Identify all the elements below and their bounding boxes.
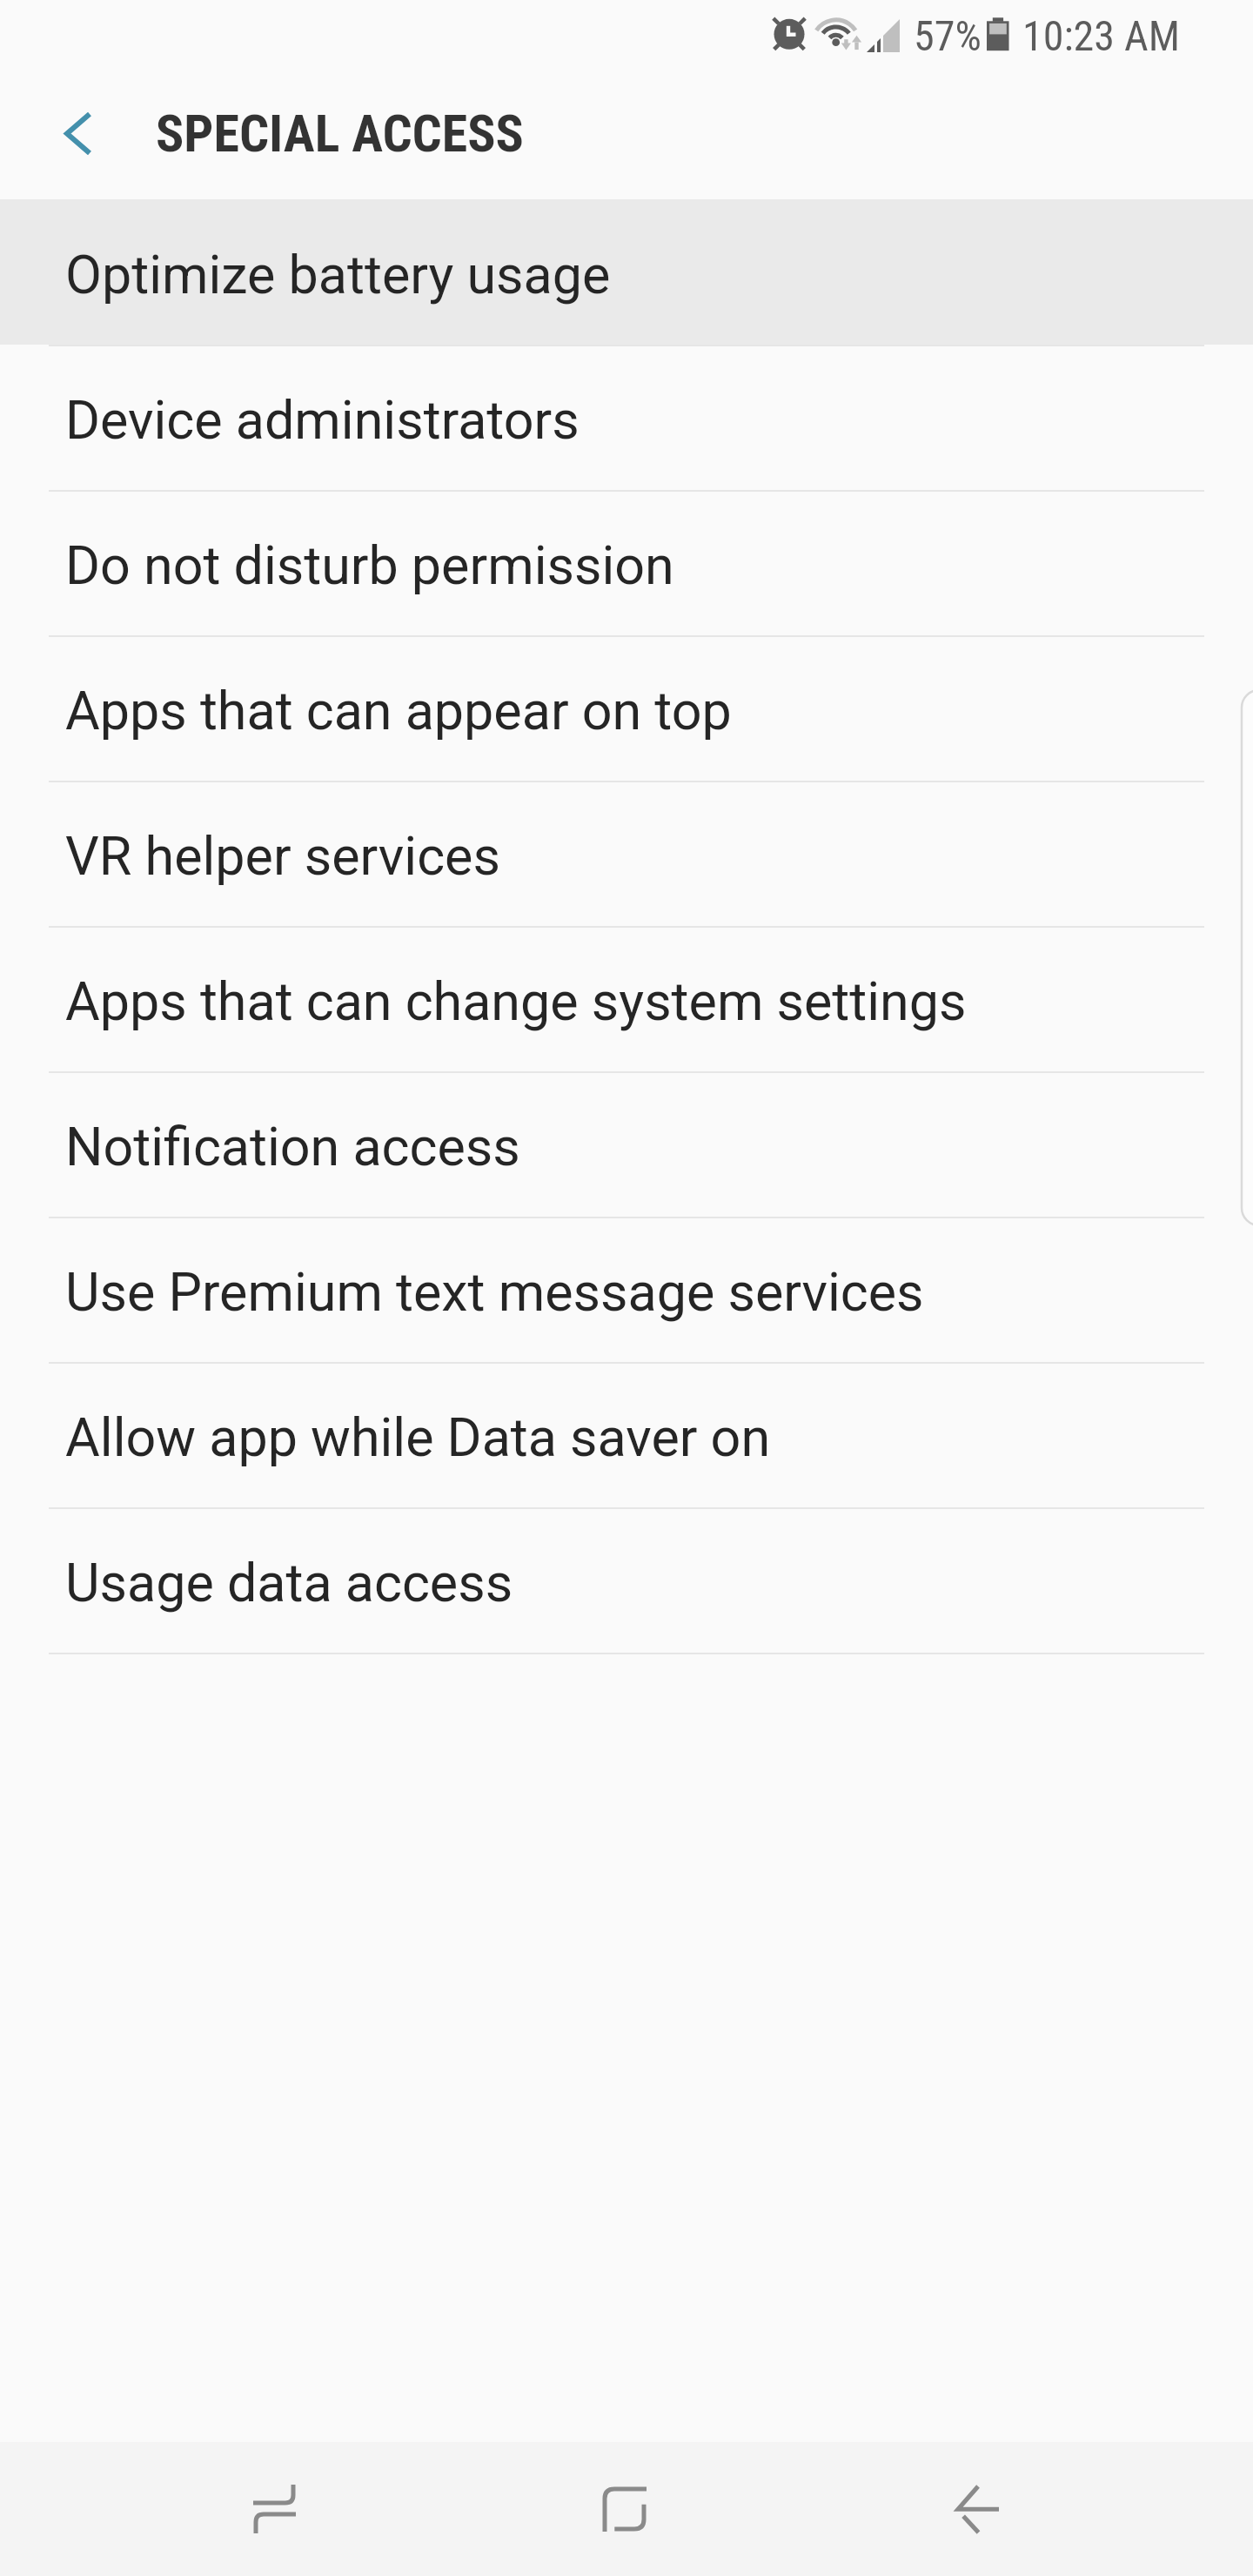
- staticText: Allow app while Data saver on: [65, 1406, 771, 1468]
- button[interactable]: Apps that can appear on top: [0, 635, 1253, 781]
- button[interactable]: Use Premium text message services: [0, 1217, 1253, 1362]
- staticText: Apps that can change system settings: [65, 970, 967, 1032]
- staticText: Notification access: [65, 1116, 520, 1177]
- staticText: Apps that can appear on top: [65, 680, 732, 741]
- button[interactable]: Home: [537, 2442, 711, 2576]
- staticText: SPECIAL ACCESS: [156, 103, 524, 164]
- button[interactable]: Back: [891, 2442, 1065, 2576]
- staticText: Use Premium text message services: [65, 1261, 924, 1323]
- button[interactable]: Notification access: [0, 1071, 1253, 1217]
- staticText: Do not disturb permission: [65, 534, 674, 596]
- button[interactable]: Allow app while Data saver on: [0, 1362, 1253, 1507]
- staticText: Usage data access: [65, 1552, 513, 1613]
- button[interactable]: Navigate up: [0, 71, 150, 199]
- button[interactable]: VR helper services: [0, 781, 1253, 926]
- staticText: 57%: [914, 11, 982, 60]
- button[interactable]: Usage data access: [0, 1507, 1253, 1653]
- staticText: VR helper services: [65, 825, 500, 887]
- staticText: Optimize battery usage: [65, 244, 611, 305]
- staticText: 10:23 AM: [1022, 11, 1180, 60]
- button[interactable]: Device administrators: [0, 345, 1253, 490]
- button[interactable]: Optimize battery usage: [0, 199, 1253, 345]
- staticText: Device administrators: [65, 389, 580, 451]
- button[interactable]: Apps that can change system settings: [0, 926, 1253, 1071]
- button[interactable]: Recent apps: [187, 2442, 361, 2576]
- button[interactable]: Do not disturb permission: [0, 490, 1253, 635]
